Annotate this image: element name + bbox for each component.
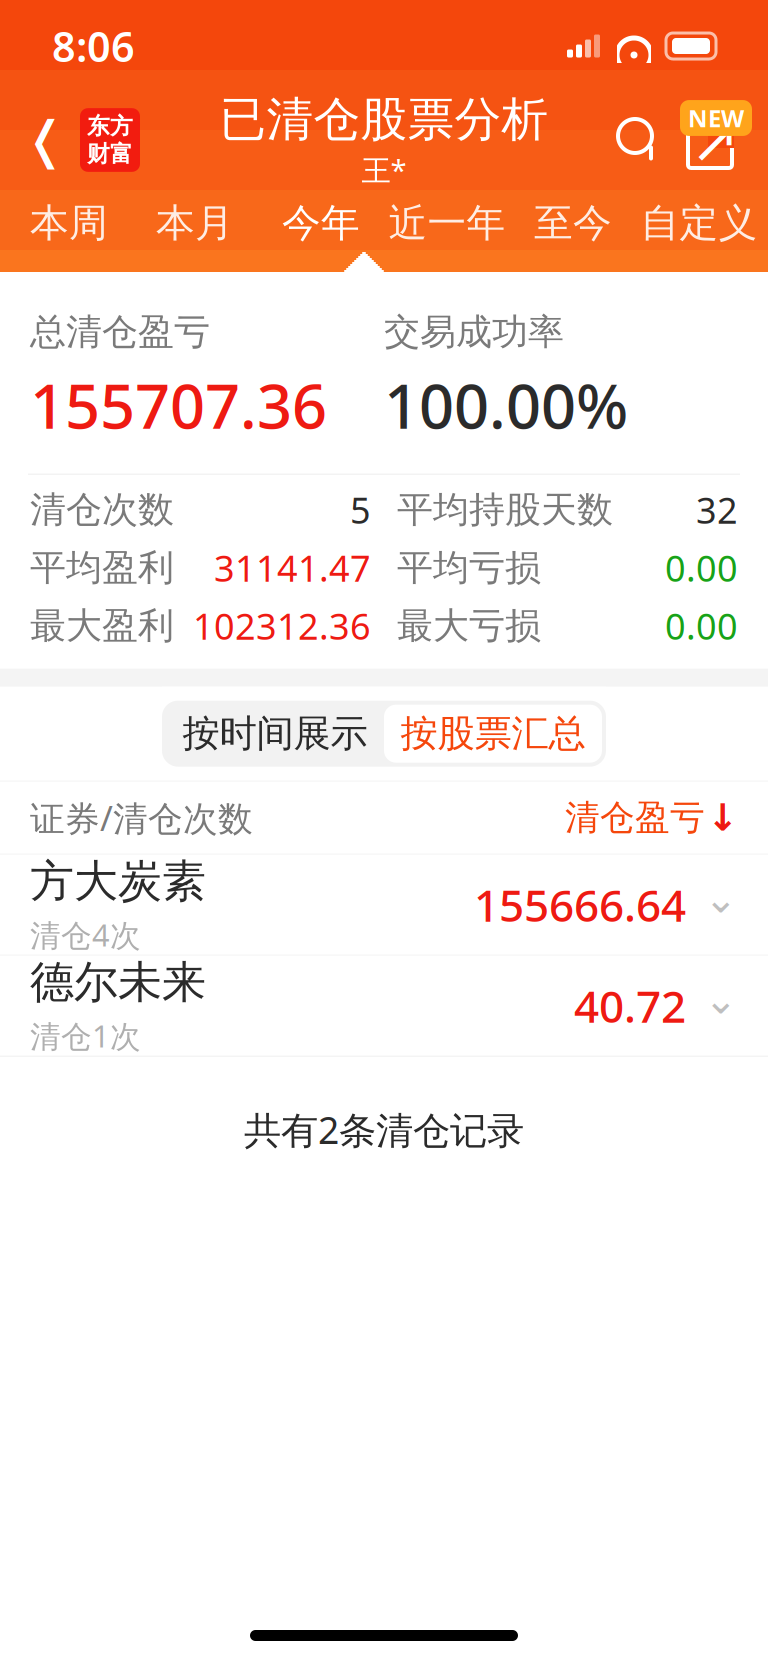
staticText: 自定义 [640,199,757,247]
button[interactable]: 自定义 [636,186,762,260]
staticText: 平均盈利 [30,546,174,590]
staticText: 平均持股天数 [397,488,613,532]
staticText: 共有2条清仓记录 [244,1105,524,1154]
staticText: 王* [361,150,406,189]
staticText: 证券/清仓次数 [30,795,253,841]
staticText: ↗ [690,109,739,175]
staticText: 清仓次数 [30,488,174,532]
button[interactable]: 按时间展示 [166,701,384,767]
staticText: 德尔未来 [30,955,206,1009]
button[interactable]: 分享 [670,97,750,183]
staticText: 0.00 [665,544,738,592]
staticText: 清仓盈亏 [565,796,705,839]
staticText: 31141.47 [214,544,371,592]
staticText: 40.72 [574,976,686,1035]
staticText: 100.00% [384,364,628,446]
staticText: 按时间展示 [182,711,367,757]
button[interactable]: 至今 [510,186,636,260]
staticText: 0.00 [665,602,738,650]
staticText: 总清仓盈亏 [30,310,210,354]
staticText: 至今 [534,199,612,247]
staticText: 清仓1次 [30,1015,141,1056]
button[interactable]: 按股票汇总 [384,705,602,763]
staticText: 清仓4次 [30,914,141,955]
button[interactable]: 今年 [258,186,384,260]
staticText: 5 [350,486,371,534]
staticText: 东方 [87,112,133,140]
staticText: 最大盈利 [30,604,174,648]
button[interactable]: 德尔未来 [0,956,768,1057]
staticText: 最大亏损 [397,604,541,648]
staticText: 155707.36 [30,364,327,446]
staticText: 财富 [87,140,133,168]
button[interactable]: 清仓盈亏 [565,796,738,839]
staticText: 交易成功率 [384,310,564,354]
button[interactable]: 本周 [6,186,132,260]
staticText: 已清仓股票分析 [219,91,548,148]
staticText: 按股票汇总 [400,711,585,757]
staticText: 本周 [30,199,108,247]
staticText: 155666.64 [474,875,686,934]
button[interactable]: 本月 [132,186,258,260]
staticText: 32 [696,486,738,534]
staticText: 102312.36 [193,602,371,650]
staticText: 8:06 [52,19,135,73]
button[interactable]: 搜索 [608,100,670,180]
staticText: 今年 [282,199,360,247]
staticText: ↓ [707,796,738,839]
staticText: 本月 [156,199,234,247]
staticText: ⌄ [704,876,738,921]
button[interactable]: 返回 东方财富 [0,94,164,186]
staticText: 方大炭素 [30,854,206,908]
staticText: NEW [688,102,744,134]
button[interactable]: 方大炭素 [0,855,768,956]
staticText: 平均亏损 [397,546,541,590]
staticText: ⌄ [704,977,738,1022]
button[interactable]: 近一年 [384,186,510,260]
staticText: 近一年 [388,199,505,247]
staticText: ❬ [24,111,66,169]
